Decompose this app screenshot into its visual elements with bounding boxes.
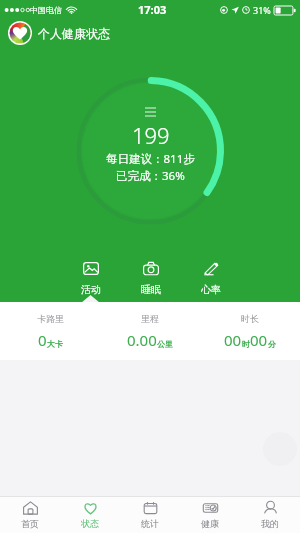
staticText: 睡眠 <box>141 283 161 296</box>
staticText: 健康 <box>201 518 219 529</box>
button[interactable]: 卡路里 <box>0 313 100 350</box>
button[interactable]: 时长 <box>200 313 300 350</box>
button[interactable]: 睡眠 <box>121 262 181 296</box>
staticText: 个人健康状态 <box>38 26 110 41</box>
staticText: 卡路里 <box>37 313 64 324</box>
staticText: 0.00 <box>127 330 157 350</box>
staticText: 分 <box>268 339 276 349</box>
button[interactable]: 个人健康状态 <box>8 21 110 45</box>
button[interactable]: 里程 <box>100 313 200 350</box>
button[interactable]: 首页 <box>0 497 60 533</box>
staticText: 里程 <box>141 313 159 324</box>
staticText: 公里 <box>157 339 173 349</box>
staticText: 17:03 <box>138 2 167 17</box>
staticText: 199 <box>132 120 170 150</box>
staticText: 每日建议：811步 <box>106 151 195 167</box>
staticText: 大卡 <box>47 339 63 349</box>
staticText: 时长 <box>241 313 259 324</box>
button[interactable]: 活动 <box>61 262 121 296</box>
staticText: 中国电信 <box>30 5 62 15</box>
staticText: 状态 <box>81 518 99 529</box>
staticText: 0 <box>38 330 47 350</box>
staticText: 活动 <box>81 283 101 296</box>
staticText: 心率 <box>201 283 221 296</box>
staticText: 00 <box>224 330 242 350</box>
button[interactable]: 健康 <box>180 497 240 533</box>
staticText: 时 <box>242 339 250 349</box>
staticText: 00 <box>250 330 268 350</box>
staticText: 已完成：36% <box>116 168 185 184</box>
button[interactable]: 心率 <box>181 262 241 296</box>
button[interactable]: 统计 <box>120 497 180 533</box>
staticText: 统计 <box>141 518 159 529</box>
staticText: 我的 <box>261 518 279 529</box>
staticText: 首页 <box>21 518 39 529</box>
staticText: 31% <box>253 4 271 16</box>
button[interactable]: 状态 <box>60 497 120 533</box>
button[interactable]: 我的 <box>240 497 300 533</box>
